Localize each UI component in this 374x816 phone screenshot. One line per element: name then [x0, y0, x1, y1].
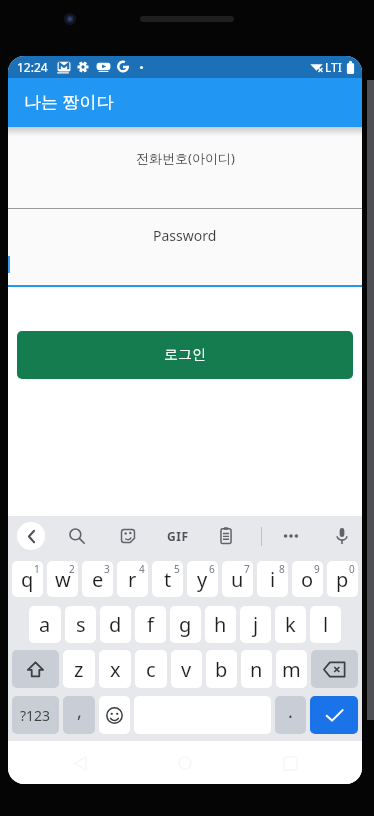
button[interactable]: k [275, 606, 306, 643]
staticText: k [285, 611, 296, 638]
staticText: 8 [279, 562, 285, 576]
button[interactable]: q [12, 561, 43, 597]
button[interactable]: u [222, 561, 253, 597]
staticText: 전화번호(아이디) [136, 149, 235, 167]
button[interactable]: 로그인 [17, 331, 353, 379]
button[interactable]: j [240, 606, 271, 643]
button[interactable]: p [327, 561, 358, 597]
staticText: t [164, 566, 172, 593]
button[interactable]: y [187, 561, 218, 597]
staticText: ?123 [20, 706, 51, 725]
staticText: Password [153, 226, 217, 245]
button[interactable]: 전화번호(아이디) [8, 127, 362, 208]
button[interactable]: c [135, 650, 167, 688]
staticText: . [288, 699, 293, 724]
button[interactable]: b [206, 650, 237, 688]
staticText: c [146, 656, 156, 683]
staticText: , [77, 699, 82, 724]
staticText: 9 [314, 562, 320, 576]
button[interactable]: e [82, 561, 113, 597]
staticText: 4 [139, 562, 145, 576]
button[interactable]: o [292, 561, 323, 597]
button[interactable]: h [205, 606, 236, 643]
staticText: z [74, 656, 84, 683]
button[interactable]: Search [63, 522, 91, 550]
button[interactable]: ?123 [12, 696, 59, 734]
staticText: u [231, 566, 244, 593]
button[interactable]: Backspace [311, 650, 358, 688]
staticText: f [147, 611, 154, 638]
staticText: x [110, 656, 121, 683]
button[interactable]: f [135, 606, 166, 643]
staticText: j [253, 611, 259, 638]
button[interactable]: Back [17, 522, 45, 550]
button[interactable]: More options [277, 522, 305, 550]
button[interactable]: Stickers [114, 522, 142, 550]
staticText: s [76, 611, 86, 638]
button[interactable]: z [63, 650, 95, 688]
button[interactable]: Enter [310, 696, 358, 734]
staticText: g [179, 611, 192, 638]
staticText: a [39, 611, 51, 638]
staticText: 7 [244, 562, 250, 576]
staticText: 0 [349, 562, 355, 576]
button[interactable]: Clipboard [212, 522, 240, 550]
staticText: e [92, 566, 104, 593]
button[interactable]: g [170, 606, 201, 643]
staticText: 나는 짱이다 [24, 90, 114, 113]
staticText: 12:24 [17, 59, 48, 75]
button[interactable]: Shift [12, 650, 59, 688]
button[interactable]: a [29, 606, 61, 643]
staticText: r [128, 566, 137, 593]
staticText: 6 [209, 562, 215, 576]
button[interactable]: GIF [162, 522, 194, 550]
button[interactable]: v [171, 650, 202, 688]
staticText: v [181, 656, 192, 683]
button[interactable]: Emoji [99, 696, 130, 734]
button[interactable]: s [65, 606, 96, 643]
staticText: n [250, 656, 263, 683]
staticText: i [270, 566, 276, 593]
staticText: 2 [69, 562, 75, 576]
staticText: d [109, 611, 122, 638]
button[interactable]: w [47, 561, 78, 597]
button[interactable]: m [276, 650, 307, 688]
button[interactable]: Voice input [328, 522, 356, 550]
button[interactable]: n [241, 650, 272, 688]
button[interactable]: , [63, 696, 95, 734]
staticText: o [301, 566, 314, 593]
staticText: p [336, 566, 349, 593]
staticText: LTI [325, 59, 342, 75]
button[interactable]: l [310, 606, 341, 643]
staticText: h [214, 611, 227, 638]
staticText: q [21, 566, 34, 593]
button[interactable]: Password [8, 209, 362, 285]
staticText: w [55, 566, 71, 593]
staticText: b [215, 656, 228, 683]
staticText: l [323, 611, 329, 638]
button[interactable]: d [100, 606, 131, 643]
staticText: 1 [34, 562, 40, 576]
button[interactable]: t [152, 561, 183, 597]
staticText: 3 [104, 562, 110, 576]
button[interactable]: i [257, 561, 288, 597]
staticText: y [197, 566, 208, 593]
staticText: GIF [167, 528, 189, 544]
button[interactable]: . [275, 696, 306, 734]
staticText: 로그인 [164, 346, 206, 364]
button[interactable]: x [99, 650, 131, 688]
staticText: 5 [174, 562, 180, 576]
staticText: m [282, 656, 301, 683]
button[interactable]: r [117, 561, 148, 597]
